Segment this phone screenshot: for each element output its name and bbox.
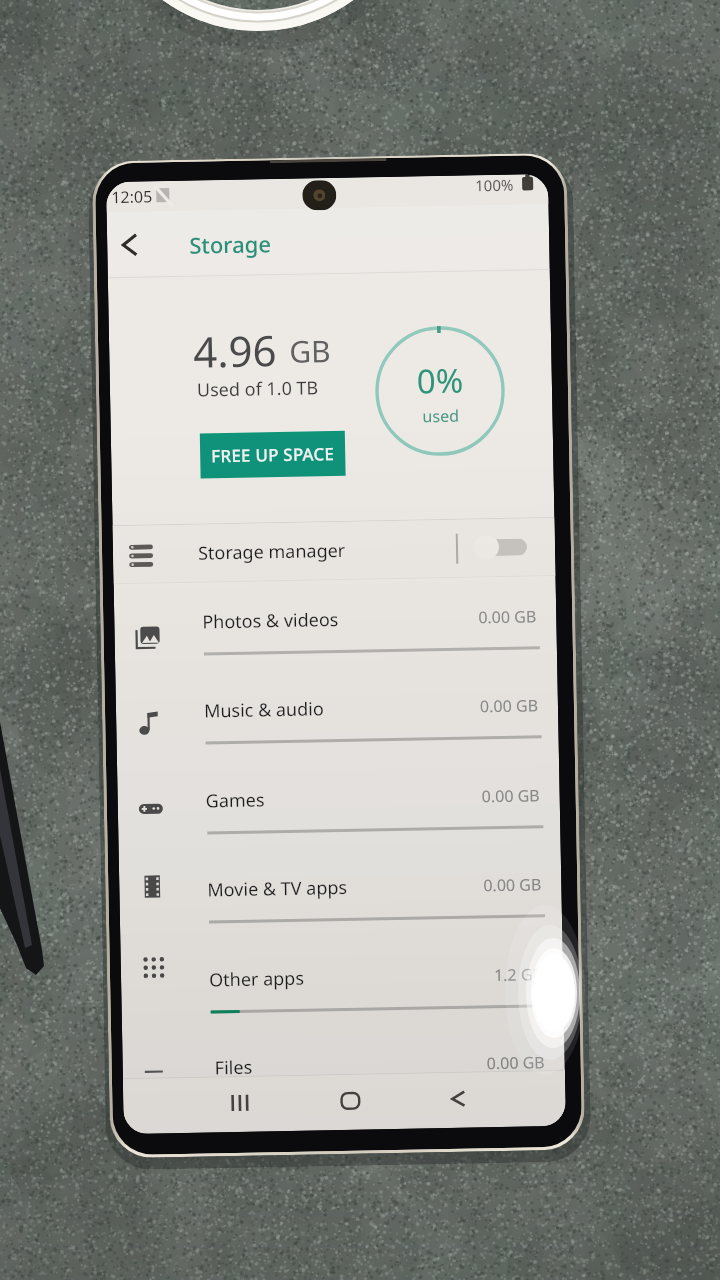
button[interactable]: Back <box>432 1072 485 1125</box>
staticText: 0% <box>416 358 464 403</box>
staticText: Storage manager <box>198 538 346 566</box>
staticText: 1.2 GB <box>494 963 543 986</box>
staticText: Files <box>214 1055 253 1080</box>
staticText: Photos & videos <box>202 607 338 635</box>
staticText: GB <box>289 330 332 372</box>
staticText: Storage <box>189 228 271 260</box>
staticText: used <box>422 405 460 427</box>
button[interactable]: Storage manager toggle <box>473 531 531 562</box>
button[interactable]: FREE UP SPACE <box>200 431 346 478</box>
staticText: 0.00 GB <box>481 784 540 807</box>
staticText: 12:05 <box>111 185 152 208</box>
button[interactable]: Photos & videos <box>114 576 557 673</box>
staticText: 4.96 <box>193 321 278 380</box>
staticText: 0.00 GB <box>478 605 536 628</box>
button[interactable]: Storage manager <box>112 518 555 583</box>
button[interactable]: Movie & TV apps <box>119 844 562 941</box>
staticText: Games <box>205 787 265 813</box>
staticText: 0.00 GB <box>480 694 538 717</box>
staticText: 0.00 GB <box>486 1051 545 1074</box>
button[interactable]: Other apps <box>120 934 564 1031</box>
staticText: 100% <box>475 175 514 195</box>
staticText: Music & audio <box>204 696 324 724</box>
staticText: Other apps <box>209 966 304 992</box>
button[interactable]: Home <box>324 1074 377 1127</box>
button[interactable]: Recent apps <box>214 1076 267 1129</box>
staticText: 0.00 GB <box>483 873 541 896</box>
button[interactable]: Games <box>117 755 561 852</box>
button[interactable]: Back <box>107 218 158 271</box>
staticText: Used of 1.0 TB <box>197 375 319 403</box>
staticText: FREE UP SPACE <box>211 442 334 467</box>
staticText: Movie & TV apps <box>207 875 348 902</box>
button[interactable]: Music & audio <box>115 665 559 762</box>
